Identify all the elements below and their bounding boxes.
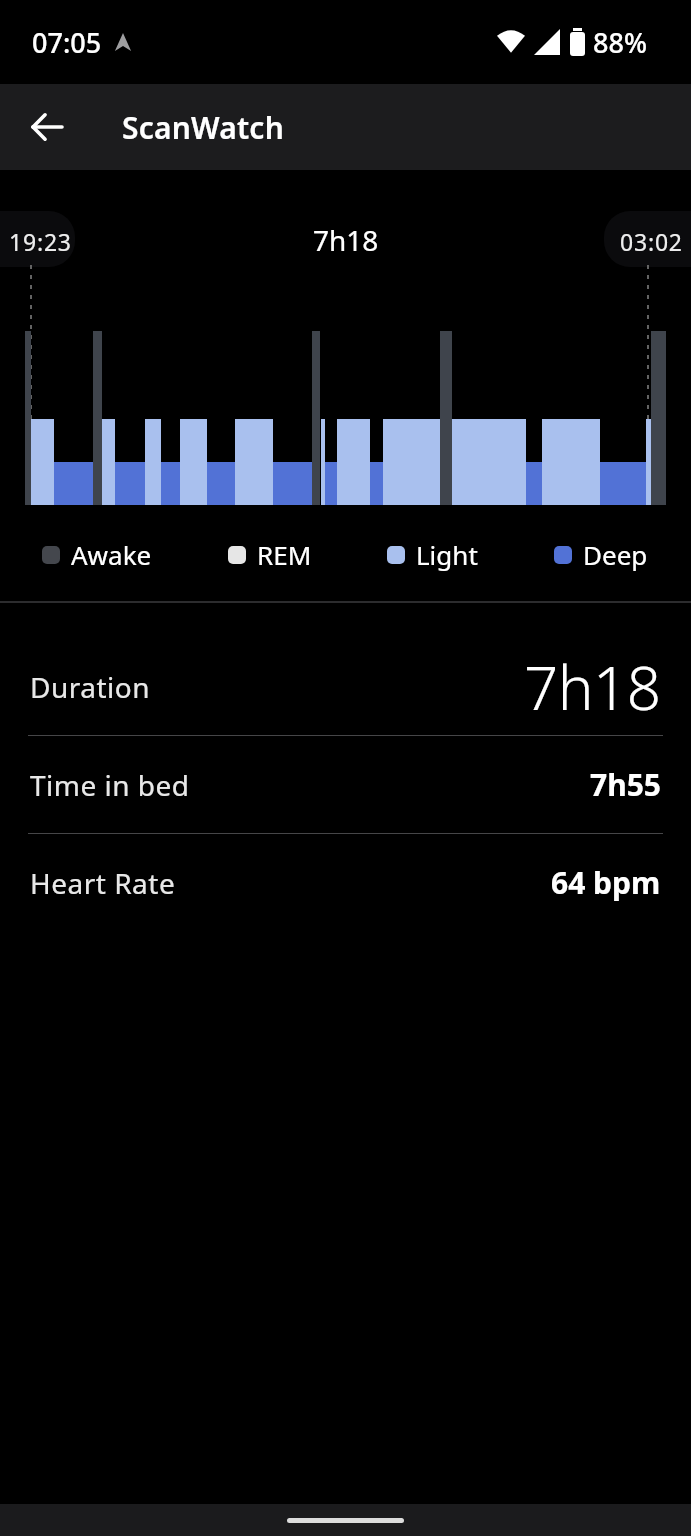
- staticText: 7h55: [590, 764, 661, 805]
- button[interactable]: Heart Rate: [0, 834, 691, 931]
- staticText: Deep: [583, 537, 648, 572]
- button[interactable]: Time in bed: [0, 736, 691, 833]
- staticText: 88%: [593, 24, 647, 61]
- staticText: Duration: [30, 668, 151, 706]
- staticText: Awake: [71, 537, 152, 572]
- button[interactable]: Light: [387, 537, 478, 572]
- staticText: ScanWatch: [122, 107, 284, 148]
- button[interactable]: Duration: [0, 638, 691, 735]
- button[interactable]: REM: [228, 537, 312, 572]
- staticText: 07:05: [32, 24, 102, 61]
- staticText: 03:02: [620, 226, 683, 257]
- staticText: 19:23: [9, 226, 72, 257]
- staticText: Light: [416, 537, 478, 572]
- button[interactable]: Deep: [554, 537, 648, 572]
- staticText: Heart Rate: [30, 864, 176, 902]
- staticText: REM: [257, 537, 312, 572]
- button[interactable]: Awake: [42, 537, 152, 572]
- staticText: 64 bpm: [551, 862, 661, 903]
- staticText: 7h18: [313, 221, 379, 259]
- staticText: 7h18: [524, 646, 661, 728]
- button[interactable]: [14, 94, 80, 160]
- staticText: Time in bed: [30, 766, 190, 804]
